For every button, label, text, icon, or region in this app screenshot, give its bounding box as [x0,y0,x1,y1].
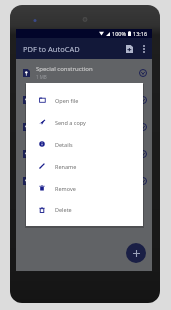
button[interactable]: Special construction [16,59,152,86]
staticText: Open file [55,97,79,104]
button[interactable]: Expand [138,122,148,132]
button[interactable]: Send a copy [26,111,143,133]
staticText: 13:16 [133,30,148,37]
button[interactable]: Floor layout v3 [16,113,152,140]
button[interactable]: Bridge plan sheet [16,86,152,113]
staticText: 2 MB [36,101,47,107]
staticText: Remove [55,185,76,192]
staticText: Floor layout v3 [36,119,78,127]
button[interactable]: Expand [138,149,148,159]
staticText: Rename [55,163,77,170]
staticText: PDF to AutoCAD [23,44,80,54]
staticText: Site survey [36,146,67,154]
staticText: Special construction [36,65,93,73]
button[interactable]: Expand [138,68,148,78]
staticText: 3 MB [36,182,47,188]
button[interactable]: Add file [126,243,146,263]
button[interactable]: Details [26,133,143,155]
staticText: 1 MB [36,74,47,80]
staticText: Send a copy [55,119,86,126]
button[interactable]: Expand [138,95,148,105]
staticText: Details [55,141,73,148]
staticText: 100% [112,30,127,37]
button[interactable]: Save as [122,41,137,56]
button[interactable]: Site survey [16,140,152,167]
button[interactable]: Rename [26,155,143,177]
button[interactable]: More options [137,42,151,56]
button[interactable]: Detail drawing [16,167,152,194]
staticText: Delete [55,206,72,213]
button[interactable]: Open file [26,89,143,111]
staticText: Bridge plan sheet [36,92,86,100]
button[interactable]: Delete [26,199,143,220]
button[interactable]: Remove [26,177,143,199]
button[interactable]: Expand [138,176,148,186]
